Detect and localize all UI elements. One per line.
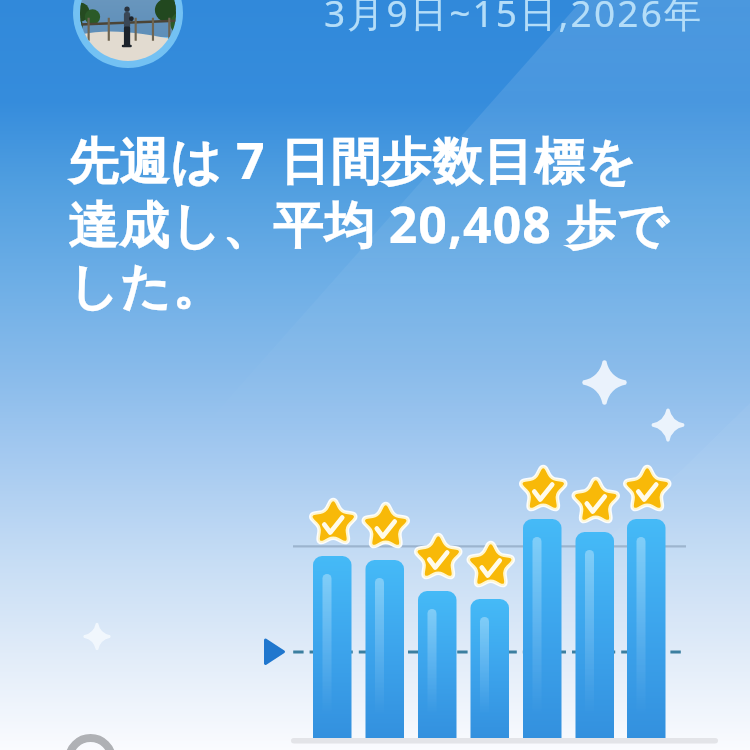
button[interactable]: Profile photo [73,0,183,68]
staticText: 3月9日~15日,2026年 [324,0,704,38]
staticText: 先週は 7 日間歩数目標を 達成し、平均 20,408 歩で した。 [68,126,669,318]
